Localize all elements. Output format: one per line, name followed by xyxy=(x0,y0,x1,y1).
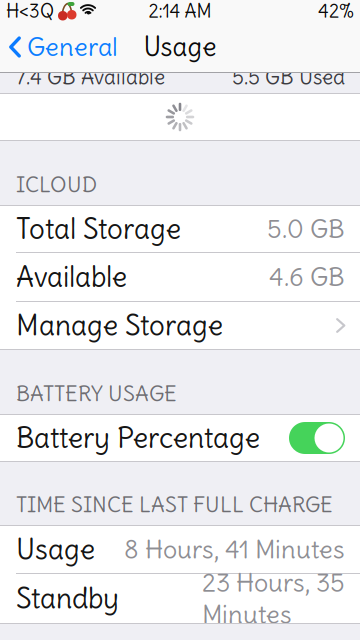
staticText: 4.6 GB xyxy=(269,261,345,293)
staticText: 5.5 GB Used xyxy=(232,64,345,90)
button[interactable]: Available xyxy=(0,253,360,301)
button[interactable]: Battery Percentage xyxy=(289,422,345,454)
button[interactable]: Back to General xyxy=(9,31,118,63)
staticText: TIME SINCE LAST FULL CHARGE xyxy=(16,491,333,518)
staticText: Available xyxy=(16,259,127,295)
staticText: 2:14 AM xyxy=(148,0,211,23)
button[interactable]: Total Storage xyxy=(0,206,360,252)
staticText: 5.0 GB xyxy=(267,213,345,245)
staticText: Total Storage xyxy=(16,211,181,247)
staticText: Battery Percentage xyxy=(16,420,260,456)
button[interactable]: Standby xyxy=(0,574,360,623)
button[interactable]: Manage Storage xyxy=(0,302,360,349)
staticText: BATTERY USAGE xyxy=(16,380,177,407)
staticText: General xyxy=(27,31,118,63)
staticText: Standby xyxy=(16,581,119,616)
staticText: 23 Hours, 35 Minutes xyxy=(202,567,345,630)
staticText: 8 Hours, 41 Minutes xyxy=(124,534,345,565)
staticText: ICLOUD xyxy=(16,171,97,198)
staticText: Usage xyxy=(16,532,95,567)
staticText: 42% xyxy=(318,0,354,23)
button[interactable]: Usage xyxy=(0,526,360,573)
staticText: 7.4 GB Available xyxy=(16,64,165,90)
staticText: H<3Q xyxy=(6,0,54,23)
staticText: Manage Storage xyxy=(16,308,223,343)
staticText: Usage xyxy=(143,31,216,63)
